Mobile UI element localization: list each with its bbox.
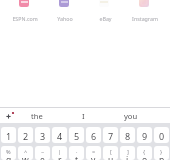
staticText: ESPN.com: [12, 15, 38, 22]
staticText: 6: [91, 130, 97, 142]
staticText: t: [75, 154, 79, 160]
button[interactable]: |: [52, 146, 67, 160]
button[interactable]: 5: [69, 127, 84, 143]
button[interactable]: ]: [120, 146, 135, 160]
staticText: 9: [142, 130, 148, 142]
staticText: [: [110, 148, 112, 156]
button[interactable]: }: [154, 146, 169, 160]
button[interactable]: the: [14, 108, 60, 123]
button[interactable]: 0: [154, 127, 169, 143]
staticText: ·: [76, 148, 78, 156]
staticText: =: [92, 148, 96, 156]
staticText: p: [159, 154, 165, 160]
staticText: 4: [57, 130, 63, 142]
button[interactable]: ESPN.com: [5, 0, 45, 22]
staticText: 8: [125, 130, 131, 142]
button[interactable]: ^: [18, 146, 33, 160]
button[interactable]: {: [137, 146, 152, 160]
staticText: 7: [108, 130, 114, 142]
button[interactable]: 9: [137, 127, 152, 143]
button[interactable]: 3: [35, 127, 50, 143]
staticText: q: [6, 154, 12, 160]
button[interactable]: 1: [1, 127, 16, 143]
staticText: r: [58, 154, 62, 160]
button[interactable]: 4: [52, 127, 67, 143]
staticText: %: [6, 148, 11, 156]
button[interactable]: Instagram: [125, 0, 165, 22]
staticText: 5: [74, 130, 80, 142]
button[interactable]: =: [86, 146, 101, 160]
staticText: i: [126, 154, 129, 160]
staticText: w: [22, 154, 29, 160]
button[interactable]: %: [1, 146, 16, 160]
staticText: |: [58, 148, 62, 156]
staticText: you: [124, 111, 138, 121]
button[interactable]: I: [60, 108, 107, 123]
staticText: u: [108, 154, 114, 160]
staticText: ~: [41, 148, 45, 156]
staticText: e: [40, 154, 45, 160]
button[interactable]: Add clip: [0, 108, 14, 123]
staticText: 2: [23, 130, 29, 142]
staticText: {: [143, 148, 146, 156]
staticText: 0: [159, 130, 165, 142]
staticText: Instagram: [132, 15, 158, 22]
staticText: ^: [24, 148, 28, 156]
staticText: o: [142, 154, 148, 160]
staticText: Yahoo: [57, 15, 73, 22]
staticText: I: [82, 111, 85, 121]
button[interactable]: 7: [103, 127, 118, 143]
staticText: y: [91, 154, 96, 160]
button[interactable]: [: [103, 146, 118, 160]
button[interactable]: 8: [120, 127, 135, 143]
staticText: }: [160, 148, 163, 156]
button[interactable]: 6: [86, 127, 101, 143]
staticText: ]: [127, 148, 129, 156]
staticText: 3: [40, 130, 46, 142]
button[interactable]: eBay: [85, 0, 125, 22]
staticText: the: [31, 111, 43, 121]
button[interactable]: 2: [18, 127, 33, 143]
button[interactable]: you: [107, 108, 154, 123]
staticText: eBay: [99, 15, 112, 22]
button[interactable]: Yahoo: [45, 0, 85, 22]
button[interactable]: ·: [69, 146, 84, 160]
staticText: 1: [6, 130, 12, 142]
button[interactable]: ~: [35, 146, 50, 160]
